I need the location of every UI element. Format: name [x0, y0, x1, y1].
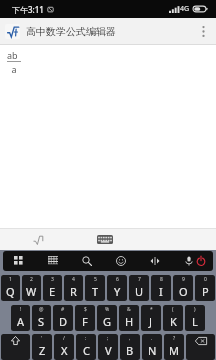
staticText: 2 [30, 276, 33, 283]
staticText: N [148, 343, 157, 358]
staticText: L [192, 314, 198, 329]
button[interactable]: 5 [85, 275, 105, 301]
button[interactable]: Voice input [181, 251, 197, 271]
staticText: ' [41, 335, 43, 342]
button[interactable]: Apps [11, 251, 27, 271]
staticText: E [49, 284, 56, 299]
button[interactable]: Cursor control [147, 251, 163, 271]
staticText: J [149, 314, 153, 329]
staticText: a [11, 63, 17, 75]
staticText: * [150, 306, 153, 313]
staticText: ? [173, 335, 176, 342]
staticText: , [129, 335, 131, 342]
staticText: P [202, 284, 209, 299]
staticText: ! [20, 306, 22, 313]
staticText: 0 [204, 276, 207, 283]
staticText: ab [7, 49, 18, 61]
button[interactable]: ' [32, 334, 52, 360]
button[interactable]: Square root [28, 229, 48, 250]
button[interactable]: Search [79, 251, 95, 271]
button[interactable]: App icon [5, 24, 20, 39]
button[interactable]: % [97, 305, 117, 331]
button[interactable]: ? [164, 334, 184, 360]
button[interactable]: More options [190, 18, 216, 44]
staticText: I [159, 284, 163, 299]
button[interactable]: ! [11, 305, 30, 331]
staticText: 8 [160, 276, 163, 283]
button[interactable]: ( [163, 305, 183, 331]
button[interactable]: 0 [195, 275, 215, 301]
staticText: 5 [94, 276, 97, 283]
button[interactable]: & [119, 305, 139, 331]
staticText: ( [172, 306, 174, 313]
button[interactable]: 8 [151, 275, 171, 301]
button[interactable]: Keyboard layout [45, 251, 61, 271]
button[interactable]: # [53, 305, 73, 331]
staticText: W [26, 284, 37, 299]
staticText: ; [107, 335, 109, 342]
button[interactable]: 2 [22, 275, 41, 301]
staticText: & [127, 306, 131, 313]
button[interactable]: 9 [173, 275, 193, 301]
button[interactable]: * [141, 305, 161, 331]
staticText: 高中数学公式编辑器 [26, 25, 116, 38]
staticText: G [103, 314, 112, 329]
button[interactable]: Backspace [186, 334, 215, 360]
button[interactable]: , [120, 334, 140, 360]
staticText: X [61, 343, 68, 358]
button[interactable]: Shift [1, 334, 30, 360]
staticText: 3 [51, 276, 54, 283]
button[interactable]: ; [98, 334, 118, 360]
button[interactable]: 6 [107, 275, 127, 301]
staticText: # [61, 306, 65, 313]
staticText: 9 [182, 276, 185, 283]
button[interactable]: 1 [1, 275, 20, 301]
button[interactable]: : [76, 334, 96, 360]
staticText: C [83, 343, 90, 358]
staticText: O [179, 284, 188, 299]
staticText: 下午3:11 [12, 4, 44, 15]
staticText: Y [114, 284, 121, 299]
staticText: 1 [9, 276, 12, 283]
staticText: Q [6, 284, 15, 299]
staticText: $ [84, 306, 87, 313]
staticText: ) [194, 306, 196, 313]
staticText: % [105, 306, 110, 313]
staticText: T [92, 284, 99, 299]
button[interactable]: 4 [64, 275, 83, 301]
staticText: 4G [180, 4, 190, 14]
staticText: / [63, 335, 65, 342]
staticText: @ [39, 306, 44, 313]
button[interactable]: ab [0, 44, 216, 228]
staticText: : [85, 335, 87, 342]
staticText: F [82, 314, 88, 329]
button[interactable]: @ [32, 305, 51, 331]
button[interactable]: $ [75, 305, 95, 331]
button[interactable]: . [142, 334, 162, 360]
button[interactable]: Toggle keyboard [94, 229, 116, 250]
staticText: 7 [138, 276, 141, 283]
staticText: 4 [72, 276, 75, 283]
staticText: Z [39, 343, 46, 358]
button[interactable]: / [54, 334, 74, 360]
staticText: V [105, 343, 112, 358]
staticText: U [135, 284, 144, 299]
staticText: A [17, 314, 25, 329]
button[interactable]: 7 [129, 275, 149, 301]
staticText: D [59, 314, 68, 329]
staticText: 6 [116, 276, 119, 283]
button[interactable]: Emoji [113, 251, 129, 271]
staticText: B [126, 343, 134, 358]
staticText: R [70, 284, 77, 299]
button[interactable]: ) [185, 305, 205, 331]
staticText: S [38, 314, 45, 329]
staticText: M [169, 343, 179, 358]
staticText: K [170, 314, 177, 329]
button[interactable]: Close keyboard [189, 251, 213, 271]
staticText: H [125, 314, 134, 329]
button[interactable]: 3 [43, 275, 62, 301]
staticText: . [151, 335, 153, 342]
